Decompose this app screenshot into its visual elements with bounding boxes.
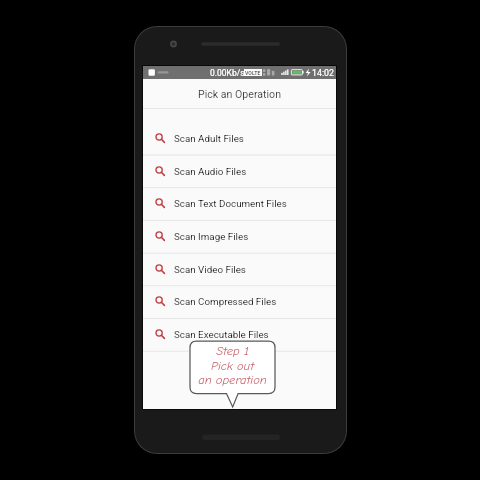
button[interactable]: Step 1 hint: Pick out an operation xyxy=(190,341,275,409)
staticText: Step 1 xyxy=(190,344,275,358)
staticText: Scan Executable Files xyxy=(174,329,269,340)
staticText: Scan Video Files xyxy=(174,264,246,275)
button[interactable]: Scan Audio Files xyxy=(143,155,336,188)
button[interactable]: Scan Compressed Files xyxy=(143,285,336,318)
staticText: Pick out xyxy=(190,359,275,373)
staticText: Scan Audio Files xyxy=(174,166,247,177)
staticText: Scan Text Document Files xyxy=(174,198,287,209)
staticText: Scan Adult Files xyxy=(174,133,244,144)
button[interactable]: Scan Executable Files xyxy=(143,318,336,351)
button[interactable]: Scan Video Files xyxy=(143,253,336,286)
staticText: Pick an Operation xyxy=(198,88,281,100)
button[interactable]: Scan Adult Files xyxy=(143,122,336,155)
staticText: 14:02 xyxy=(312,68,334,78)
staticText: an operation xyxy=(190,373,275,387)
staticText: 0.00Kb/s xyxy=(210,68,245,78)
staticText: Scan Image Files xyxy=(174,231,249,242)
button[interactable]: Scan Text Document Files xyxy=(143,187,336,220)
staticText: VOLTE xyxy=(245,70,261,76)
button[interactable]: Scan Image Files xyxy=(143,220,336,253)
staticText: Scan Compressed Files xyxy=(174,296,277,307)
